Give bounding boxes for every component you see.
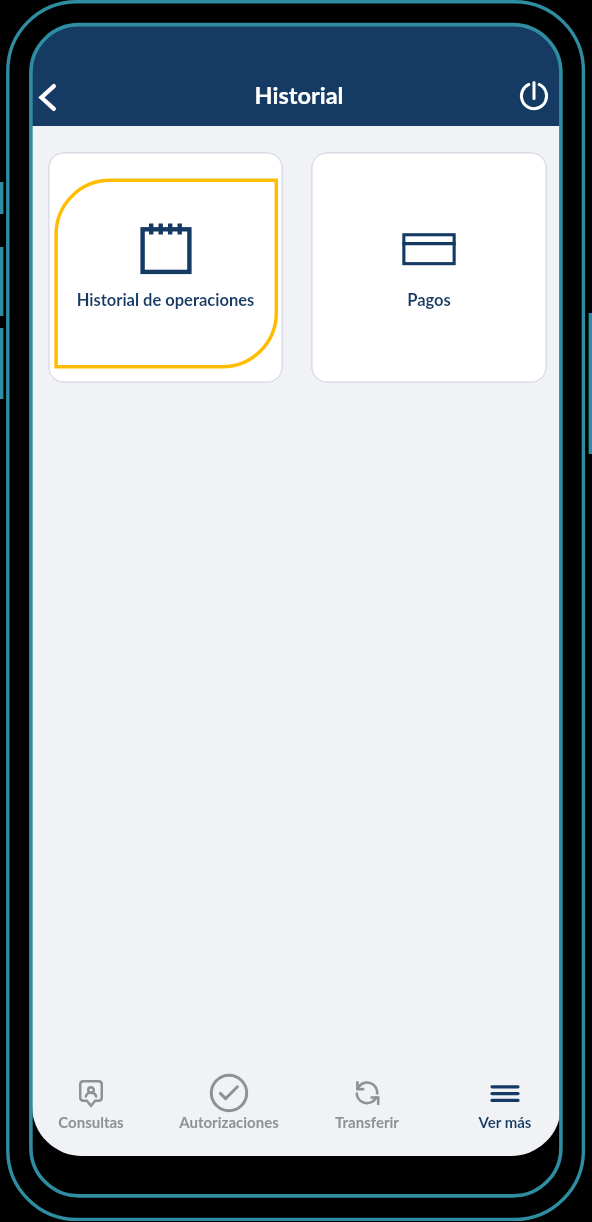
staticText: Consultas <box>32 1113 153 1131</box>
button[interactable]: Log out <box>512 76 556 120</box>
staticText: Pagos <box>311 290 547 310</box>
staticText: Ver más <box>443 1113 561 1131</box>
button[interactable]: Autorizaciones <box>167 1071 291 1133</box>
staticText: Historial <box>229 81 369 109</box>
button[interactable]: Historial de operaciones <box>48 152 283 383</box>
button[interactable]: Back <box>32 73 71 121</box>
button[interactable]: Transferir <box>305 1071 429 1133</box>
button[interactable]: Consultas <box>32 1071 153 1133</box>
staticText: Autorizaciones <box>167 1113 291 1131</box>
button[interactable]: Ver más <box>443 1071 561 1133</box>
button[interactable]: Pagos <box>311 152 547 383</box>
staticText: Transferir <box>305 1113 429 1131</box>
staticText: Historial de operaciones <box>48 290 283 310</box>
